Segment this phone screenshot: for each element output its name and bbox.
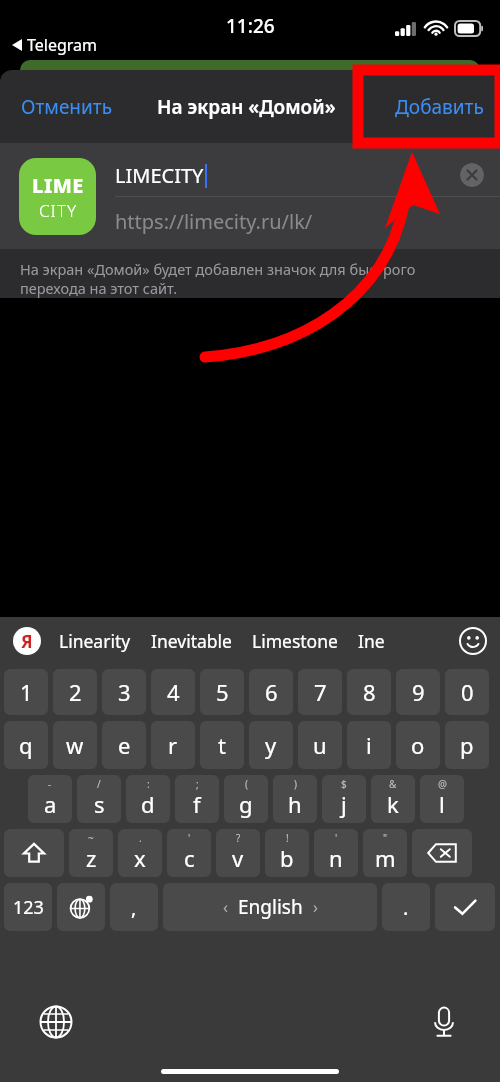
button[interactable]: i [347, 721, 391, 769]
button[interactable]: . [118, 829, 162, 877]
button[interactable]: Удалить [412, 829, 472, 877]
button[interactable]: / [77, 775, 121, 823]
button[interactable]: ? [216, 829, 260, 877]
button[interactable]: ) [273, 775, 317, 823]
staticText: k [387, 789, 399, 819]
button[interactable]: @ [420, 775, 464, 823]
staticText: h [288, 789, 302, 819]
button[interactable]: 4 [151, 669, 195, 715]
button[interactable]: t [200, 721, 244, 769]
staticText: i [366, 730, 372, 760]
staticText: a [44, 789, 57, 819]
button[interactable]: 3 [102, 669, 146, 715]
button[interactable]: Эмодзи [458, 626, 488, 656]
button[interactable]: Сменить язык [57, 883, 105, 931]
button[interactable]: Пробел [163, 883, 377, 931]
button[interactable]: 123 [4, 883, 52, 931]
staticText: 4 [167, 677, 180, 707]
button[interactable]: Shift [4, 829, 64, 877]
button[interactable]: 5 [200, 669, 244, 715]
staticText: https://limecity.ru/lk/ [115, 208, 313, 235]
button[interactable]: . [382, 883, 430, 931]
button[interactable]: r [151, 721, 195, 769]
staticText: . [403, 894, 409, 921]
staticText: ! [286, 831, 289, 845]
button[interactable]: Отменить [8, 85, 126, 129]
staticText: g [239, 789, 253, 819]
staticText: 123 [13, 895, 44, 920]
staticText: y [265, 730, 277, 760]
button[interactable]: p [445, 721, 489, 769]
staticText: 11:26 [226, 13, 275, 39]
staticText: - [48, 777, 52, 791]
button[interactable]: 7 [298, 669, 342, 715]
button[interactable]: Ine [354, 629, 389, 653]
button[interactable]: 2 [53, 669, 97, 715]
staticText: English [238, 894, 303, 920]
button[interactable]: 6 [249, 669, 293, 715]
button[interactable]: o [396, 721, 440, 769]
staticText: ' [188, 831, 191, 845]
button[interactable]: Готово [435, 883, 495, 931]
button[interactable]: " [363, 829, 407, 877]
staticText: ) [294, 777, 297, 791]
button[interactable]: e [102, 721, 146, 769]
staticText: Ine [358, 629, 385, 653]
staticText: LIMECITY [115, 162, 204, 189]
staticText: j [341, 789, 347, 819]
button[interactable]: 1 [4, 669, 48, 715]
button[interactable]: $ [322, 775, 366, 823]
staticText: n [329, 843, 343, 873]
staticText: : [147, 777, 150, 791]
button[interactable]: - [28, 775, 72, 823]
staticText: r [168, 730, 178, 760]
button[interactable]: y [249, 721, 293, 769]
staticText: f [193, 789, 201, 819]
button[interactable]: ( [224, 775, 268, 823]
button[interactable]: Linearity [55, 629, 135, 653]
button[interactable]: , [110, 883, 158, 931]
staticText: . [139, 831, 142, 845]
button[interactable]: 0 [445, 669, 489, 715]
staticText: 1 [20, 677, 33, 707]
button[interactable]: Голосовой ввод [424, 1002, 464, 1042]
button[interactable]: 8 [347, 669, 391, 715]
button[interactable]: Limestone [248, 629, 342, 653]
staticText: $ [341, 777, 347, 791]
staticText: 3 [118, 677, 131, 707]
staticText: b [280, 843, 294, 873]
button[interactable]: : [126, 775, 170, 823]
staticText: s [94, 789, 105, 819]
staticText: 5 [216, 677, 229, 707]
button[interactable]: https://limecity.ru/lk/ [115, 200, 500, 242]
staticText: Inevitable [151, 629, 232, 653]
staticText: На экран «Домой» [157, 94, 336, 120]
staticText: q [19, 730, 33, 760]
button[interactable]: 9 [396, 669, 440, 715]
staticText: LIME [32, 172, 84, 199]
staticText: @ [438, 777, 447, 791]
staticText: Я [21, 630, 33, 653]
button[interactable]: ' [314, 829, 358, 877]
button[interactable]: w [53, 721, 97, 769]
button[interactable]: ~ [69, 829, 113, 877]
button[interactable]: LIMECITY [115, 155, 500, 195]
button[interactable]: Язык ввода [36, 1002, 76, 1042]
staticText: › [313, 896, 318, 918]
button[interactable]: u [298, 721, 342, 769]
staticText: Добавить [395, 94, 484, 120]
button[interactable]: Добавить [385, 85, 494, 129]
button[interactable]: Inevitable [147, 629, 236, 653]
staticText: " [383, 831, 388, 845]
staticText: / [97, 777, 101, 791]
button[interactable]: Яндекс [13, 627, 41, 655]
button[interactable]: & [371, 775, 415, 823]
staticText: Telegram [27, 34, 98, 56]
button[interactable]: q [4, 721, 48, 769]
button[interactable]: ; [175, 775, 219, 823]
button[interactable]: ' [167, 829, 211, 877]
staticText: Отменить [21, 94, 113, 120]
button[interactable]: ! [265, 829, 309, 877]
button[interactable]: Очистить [460, 163, 484, 187]
staticText: 2 [69, 677, 82, 707]
